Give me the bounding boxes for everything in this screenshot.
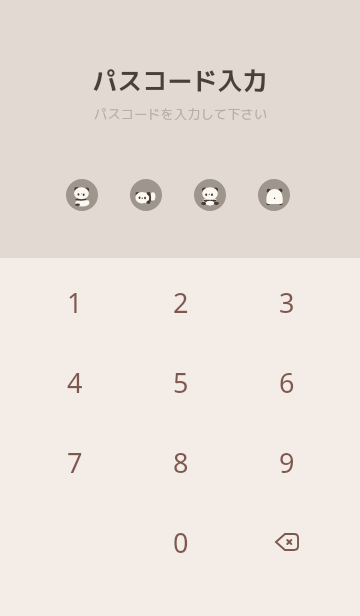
button[interactable]: 7 [22,422,128,502]
staticText: 3 [279,284,295,321]
button[interactable]: 2 [128,262,234,342]
staticText: パスコードを入力して下さい [94,105,267,124]
staticText: パスコード入力 [92,63,268,98]
staticText: 0 [173,524,189,561]
button[interactable]: 1 [22,262,128,342]
button[interactable]: 9 [234,422,340,502]
staticText: 2 [173,284,189,321]
staticText: 4 [67,364,83,401]
staticText: 1 [67,284,83,321]
staticText: 9 [279,444,295,481]
button[interactable]: 8 [128,422,234,502]
staticText: 5 [173,364,189,401]
button[interactable]: 0 [128,502,234,582]
staticText: 7 [67,444,83,481]
button[interactable]: 3 [234,262,340,342]
button[interactable]: 4 [22,342,128,422]
button[interactable]: 5 [128,342,234,422]
staticText: 6 [279,364,295,401]
other: Backspace [265,520,309,564]
button[interactable]: 6 [234,342,340,422]
staticText: 8 [173,444,189,481]
button[interactable]: Backspace [234,502,340,582]
